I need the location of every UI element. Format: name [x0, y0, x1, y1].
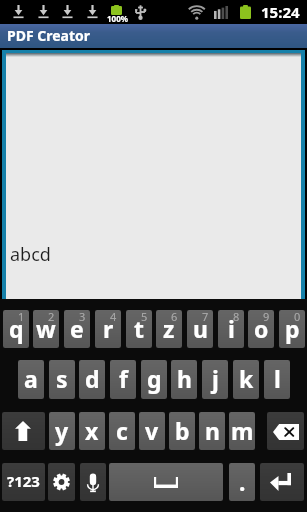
- button[interactable]: v: [139, 412, 165, 450]
- button[interactable]: e: [64, 310, 90, 348]
- button[interactable]: abcd: [6, 53, 301, 299]
- button[interactable]: z: [156, 310, 182, 348]
- staticText: x: [85, 415, 99, 446]
- button[interactable]: j: [202, 360, 228, 399]
- button[interactable]: p: [279, 310, 305, 348]
- button[interactable]: .: [229, 463, 255, 501]
- staticText: abcd: [10, 242, 51, 267]
- staticText: o: [254, 313, 269, 344]
- button[interactable]: Voice input: [80, 463, 106, 501]
- staticText: 3: [79, 310, 86, 324]
- staticText: 9: [263, 310, 270, 324]
- button[interactable]: Settings: [48, 463, 75, 501]
- staticText: q: [9, 313, 24, 344]
- staticText: 8: [233, 310, 240, 324]
- button[interactable]: ?123: [2, 463, 45, 501]
- staticText: PDF Creator: [7, 26, 91, 45]
- staticText: 15:24: [261, 2, 300, 22]
- button[interactable]: s: [49, 360, 75, 399]
- staticText: k: [239, 363, 254, 394]
- button[interactable]: Enter: [260, 463, 304, 501]
- button[interactable]: f: [110, 360, 136, 399]
- staticText: z: [163, 313, 175, 344]
- button[interactable]: y: [49, 412, 75, 450]
- staticText: u: [193, 313, 208, 344]
- staticText: m: [231, 415, 254, 446]
- button[interactable]: i: [218, 310, 244, 348]
- staticText: w: [36, 313, 56, 344]
- staticText: 2: [48, 310, 55, 324]
- staticText: p: [285, 313, 300, 344]
- button[interactable]: k: [233, 360, 259, 399]
- staticText: 4: [110, 310, 117, 324]
- button[interactable]: b: [169, 412, 195, 450]
- button[interactable]: n: [199, 412, 225, 450]
- staticText: n: [205, 415, 220, 446]
- staticText: 5: [141, 310, 148, 324]
- button[interactable]: t: [126, 310, 152, 348]
- button[interactable]: h: [171, 360, 197, 399]
- staticText: 0: [294, 310, 301, 324]
- staticText: f: [119, 363, 128, 394]
- button[interactable]: r: [95, 310, 121, 348]
- staticText: i: [228, 313, 235, 344]
- button[interactable]: m: [229, 412, 255, 450]
- staticText: g: [147, 363, 162, 394]
- staticText: l: [274, 363, 281, 394]
- staticText: j: [212, 363, 219, 394]
- button[interactable]: a: [18, 360, 44, 399]
- button[interactable]: w: [33, 310, 59, 348]
- staticText: .: [239, 466, 246, 497]
- button[interactable]: o: [248, 310, 274, 348]
- button[interactable]: u: [187, 310, 213, 348]
- button[interactable]: g: [141, 360, 167, 399]
- staticText: r: [103, 313, 114, 344]
- staticText: v: [145, 415, 159, 446]
- button[interactable]: l: [264, 360, 290, 399]
- button[interactable]: Space: [109, 463, 223, 501]
- staticText: ?123: [7, 471, 40, 491]
- staticText: 100%: [107, 13, 128, 24]
- button[interactable]: x: [79, 412, 105, 450]
- staticText: t: [134, 313, 144, 344]
- staticText: y: [55, 415, 69, 446]
- button[interactable]: Delete: [267, 412, 304, 450]
- button[interactable]: c: [109, 412, 135, 450]
- staticText: 1: [18, 310, 25, 324]
- staticText: b: [175, 415, 190, 446]
- button[interactable]: Shift: [2, 412, 45, 450]
- button[interactable]: d: [79, 360, 105, 399]
- staticText: e: [70, 313, 84, 344]
- staticText: h: [177, 363, 192, 394]
- staticText: s: [56, 363, 68, 394]
- staticText: d: [85, 363, 100, 394]
- staticText: 6: [171, 310, 178, 324]
- staticText: a: [24, 363, 38, 394]
- staticText: c: [116, 415, 128, 446]
- staticText: 7: [202, 310, 209, 324]
- button[interactable]: q: [3, 310, 29, 348]
